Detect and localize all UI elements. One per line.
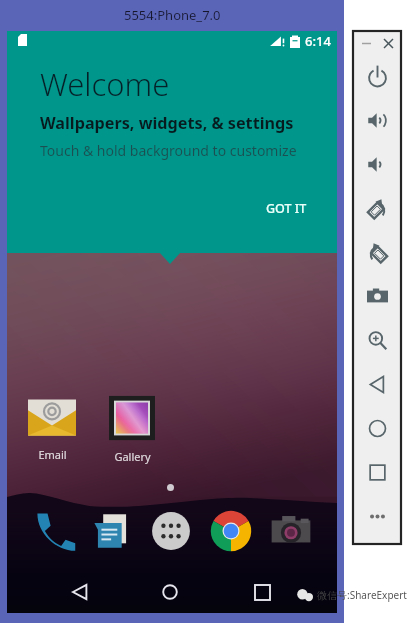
button[interactable]: More	[353, 494, 401, 538]
staticText: Wallpapers, widgets, & settings	[40, 112, 294, 134]
button[interactable]: Rotate left	[353, 186, 401, 230]
staticText: Email	[38, 447, 67, 462]
button[interactable]: Home	[153, 571, 187, 613]
staticText: Touch & hold background to customize	[40, 141, 297, 160]
button[interactable]: Volume down	[353, 142, 401, 186]
button[interactable]: Messages	[90, 509, 134, 553]
staticText: Welcome	[40, 63, 170, 105]
button[interactable]: Gallery	[92, 395, 172, 464]
button[interactable]: Recents	[245, 571, 279, 613]
button[interactable]: Email	[12, 395, 92, 462]
button[interactable]: Camera	[269, 509, 313, 553]
button[interactable]: Apps	[149, 509, 193, 553]
staticText: Gallery	[114, 449, 151, 464]
button[interactable]: Rotate right	[353, 230, 401, 274]
button[interactable]: Close	[379, 34, 397, 52]
button[interactable]: GOT IT	[258, 194, 315, 223]
button[interactable]: Back	[353, 362, 401, 406]
button[interactable]: Home	[353, 406, 401, 450]
staticText: GOT IT	[266, 200, 307, 217]
button[interactable]: Back	[63, 571, 97, 613]
staticText: 5554:Phone_7.0	[124, 6, 221, 24]
button[interactable]: Volume up	[353, 98, 401, 142]
staticText: 微信号:ShareExpert	[317, 588, 407, 602]
button[interactable]: Power	[353, 54, 401, 98]
staticText: 6:14	[305, 32, 331, 50]
button[interactable]: Zoom	[353, 318, 401, 362]
button[interactable]: Phone	[33, 509, 77, 553]
button[interactable]: Overview	[353, 450, 401, 494]
button[interactable]: Take screenshot	[353, 274, 401, 318]
button[interactable]: Chrome	[209, 509, 253, 553]
button[interactable]: Minimize	[357, 34, 375, 52]
